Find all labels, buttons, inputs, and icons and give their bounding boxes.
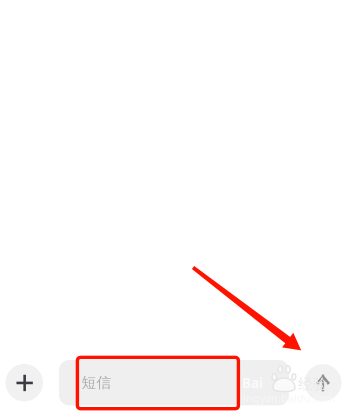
- button[interactable]: Add attachment: [5, 364, 43, 401]
- staticText: 短信: [81, 374, 111, 392]
- staticText: jingyan.baidu.com: [240, 391, 335, 405]
- button[interactable]: 短信: [59, 360, 289, 405]
- staticText: Bai: [242, 374, 263, 392]
- staticText: 经验: [298, 375, 328, 393]
- button[interactable]: Send: [304, 364, 341, 401]
